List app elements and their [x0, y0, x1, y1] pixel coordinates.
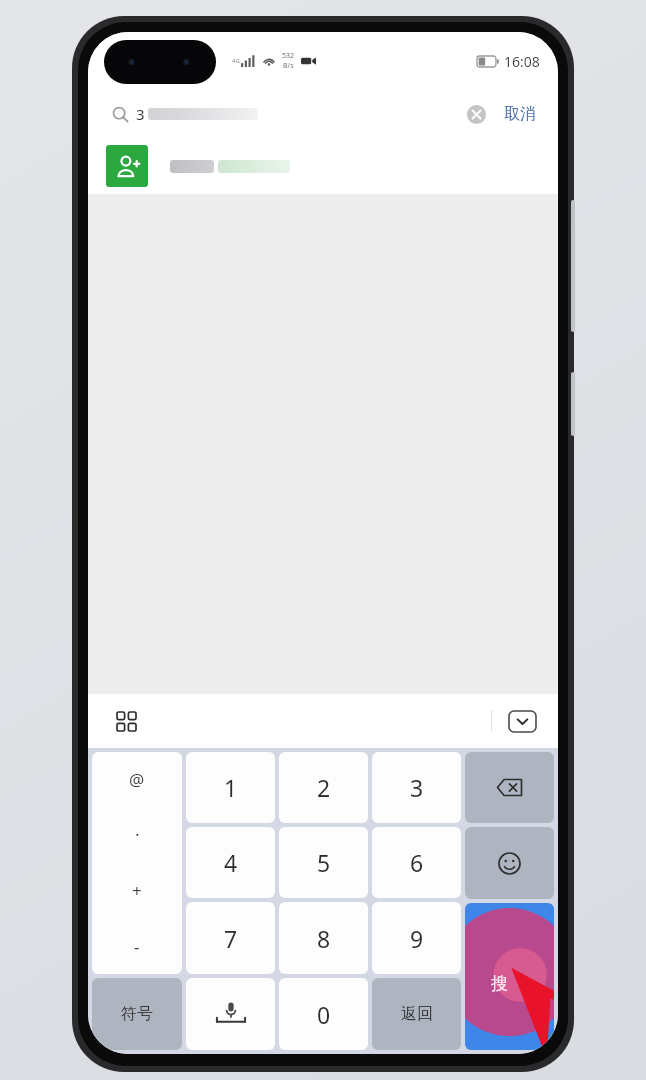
button[interactable]: 7: [186, 902, 275, 974]
staticText: 3: [410, 772, 424, 803]
button[interactable]: 2: [279, 752, 368, 823]
button[interactable]: -: [92, 918, 182, 974]
staticText: 8: [317, 923, 331, 954]
button[interactable]: Hide keyboard: [502, 704, 542, 738]
button[interactable]: Space and voice input: [186, 978, 275, 1050]
button[interactable]: 8: [279, 902, 368, 974]
staticText: 16:08: [504, 52, 540, 71]
staticText: +: [132, 879, 142, 902]
button[interactable]: 返回: [372, 978, 461, 1050]
staticText: 4: [224, 847, 238, 878]
staticText: 4G: [232, 57, 240, 65]
staticText: -: [134, 935, 140, 958]
button[interactable]: 0: [279, 978, 368, 1050]
button[interactable]: 符号: [92, 978, 182, 1050]
staticText: @: [129, 768, 145, 791]
button[interactable]: 3: [102, 97, 494, 131]
staticText: 6: [410, 847, 424, 878]
staticText: 0: [317, 999, 331, 1030]
staticText: 2: [317, 772, 331, 803]
button[interactable]: 搜: [465, 903, 554, 1050]
staticText: ·: [135, 823, 140, 846]
button[interactable]: +: [92, 862, 182, 918]
button[interactable]: 6: [372, 827, 461, 898]
staticText: 符号: [121, 1004, 153, 1024]
staticText: 1: [224, 772, 238, 803]
button[interactable]: [88, 138, 558, 194]
staticText: 返回: [401, 1004, 433, 1024]
button[interactable]: Keyboard panels: [108, 703, 144, 739]
staticText: 取消: [504, 104, 536, 124]
staticText: 9: [410, 923, 424, 954]
button[interactable]: ·: [92, 807, 182, 862]
staticText: 5: [317, 847, 331, 878]
button[interactable]: 3: [372, 752, 461, 823]
button[interactable]: Backspace: [465, 752, 554, 823]
button[interactable]: @: [92, 752, 182, 807]
button[interactable]: 5: [279, 827, 368, 898]
staticText: 7: [224, 923, 238, 954]
button[interactable]: Emoji: [465, 827, 554, 899]
button[interactable]: 取消: [494, 98, 546, 130]
button[interactable]: Clear text: [467, 105, 486, 124]
staticText: 3: [136, 104, 145, 124]
staticText: 532: [282, 51, 295, 61]
staticText: B/s: [283, 61, 294, 71]
button[interactable]: 9: [372, 902, 461, 974]
button[interactable]: 1: [186, 752, 275, 823]
button[interactable]: 4: [186, 827, 275, 898]
staticText: 搜: [491, 973, 508, 994]
